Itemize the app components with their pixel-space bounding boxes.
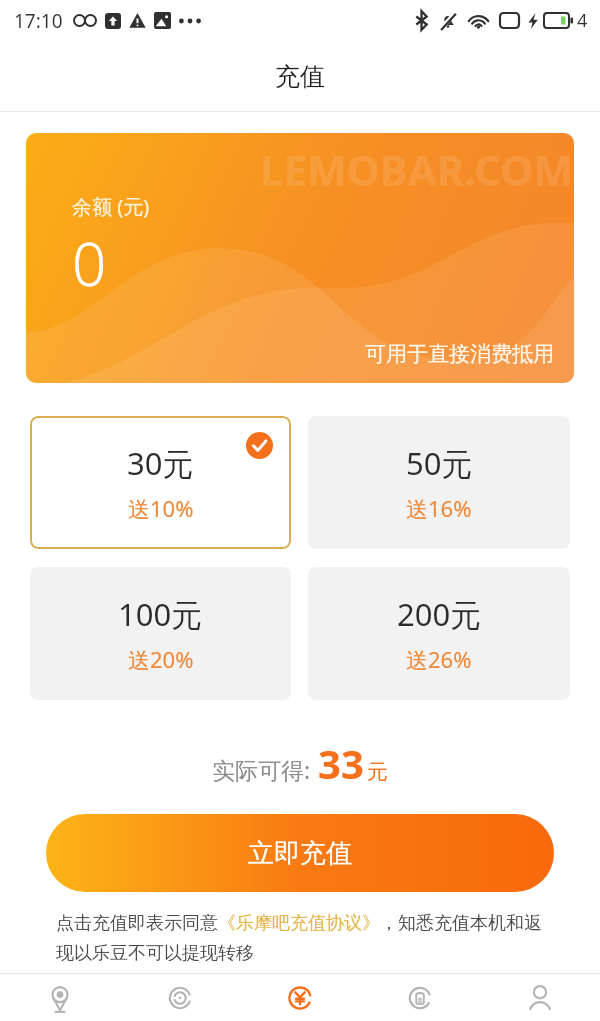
button[interactable]: 100元	[30, 567, 291, 700]
button[interactable]: 立即充值	[46, 814, 554, 892]
staticText: 余额 (元)	[72, 193, 150, 220]
button[interactable]: 200元	[308, 567, 570, 700]
staticText: 33	[318, 736, 364, 790]
staticText: LEMOBAR.COM	[260, 141, 574, 198]
staticText: 送10%	[128, 493, 194, 523]
staticText: 50元	[406, 442, 473, 484]
staticText: 实际可得:	[212, 754, 311, 785]
staticText: 30元	[127, 442, 194, 484]
staticText: 送26%	[406, 644, 472, 674]
staticText: 可用于直接消费抵用	[365, 341, 554, 367]
button[interactable]: Nearby	[0, 974, 120, 1021]
staticText: 0	[72, 222, 107, 304]
button[interactable]: Orders	[360, 974, 480, 1021]
staticText: 送20%	[128, 644, 194, 674]
staticText: 充值	[275, 61, 325, 92]
staticText: 点击充值即表示同意《乐摩吧充值协议》，知悉充值本机和返现以乐豆不可以提现转移	[56, 912, 544, 964]
staticText: 200元	[397, 593, 482, 635]
button[interactable]: 30元	[30, 416, 291, 549]
staticText: 4	[577, 8, 588, 33]
staticText: 送16%	[406, 493, 472, 523]
staticText: 元	[367, 759, 388, 785]
button[interactable]: LEMOBAR.COM	[26, 133, 574, 383]
staticText: 立即充值	[248, 837, 352, 870]
button[interactable]: Recharge	[240, 974, 360, 1021]
staticText: 100元	[118, 593, 203, 635]
button[interactable]: Profile	[480, 974, 600, 1021]
button[interactable]: 50元	[308, 416, 570, 549]
button[interactable]: Massage chairs	[120, 974, 240, 1021]
staticText: 17:10	[14, 8, 63, 34]
